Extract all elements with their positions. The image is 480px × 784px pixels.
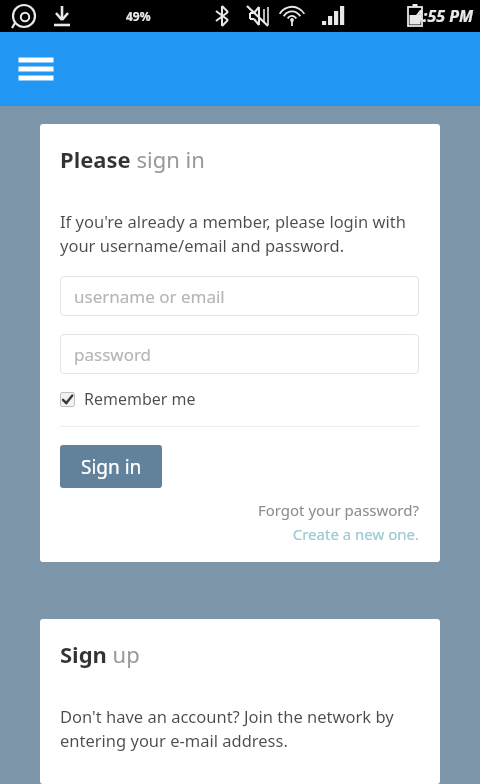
button[interactable]: Remember me xyxy=(60,388,196,410)
button[interactable]: Open navigation menu xyxy=(12,45,60,93)
staticText: username or email xyxy=(74,285,225,308)
staticText: 49% xyxy=(126,8,151,24)
staticText: 4:55 PM xyxy=(414,5,474,27)
staticText: Please sign in xyxy=(60,144,205,174)
staticText: Create a new one. xyxy=(292,524,419,544)
button[interactable]: password xyxy=(60,334,419,374)
staticText: Sign up xyxy=(60,639,140,669)
button[interactable]: Create a new one. xyxy=(60,524,419,544)
button[interactable]: username or email xyxy=(60,276,419,316)
staticText: Sign in xyxy=(81,454,142,480)
button[interactable]: Forgot your password? xyxy=(60,500,419,520)
staticText: Forgot your password? xyxy=(257,500,419,520)
staticText: Don't have an account? Join the network … xyxy=(60,705,419,752)
staticText: If you're already a member, please login… xyxy=(60,210,419,257)
staticText: Remember me xyxy=(84,388,196,410)
staticText: password xyxy=(74,343,152,366)
button[interactable]: Sign in xyxy=(60,445,162,488)
